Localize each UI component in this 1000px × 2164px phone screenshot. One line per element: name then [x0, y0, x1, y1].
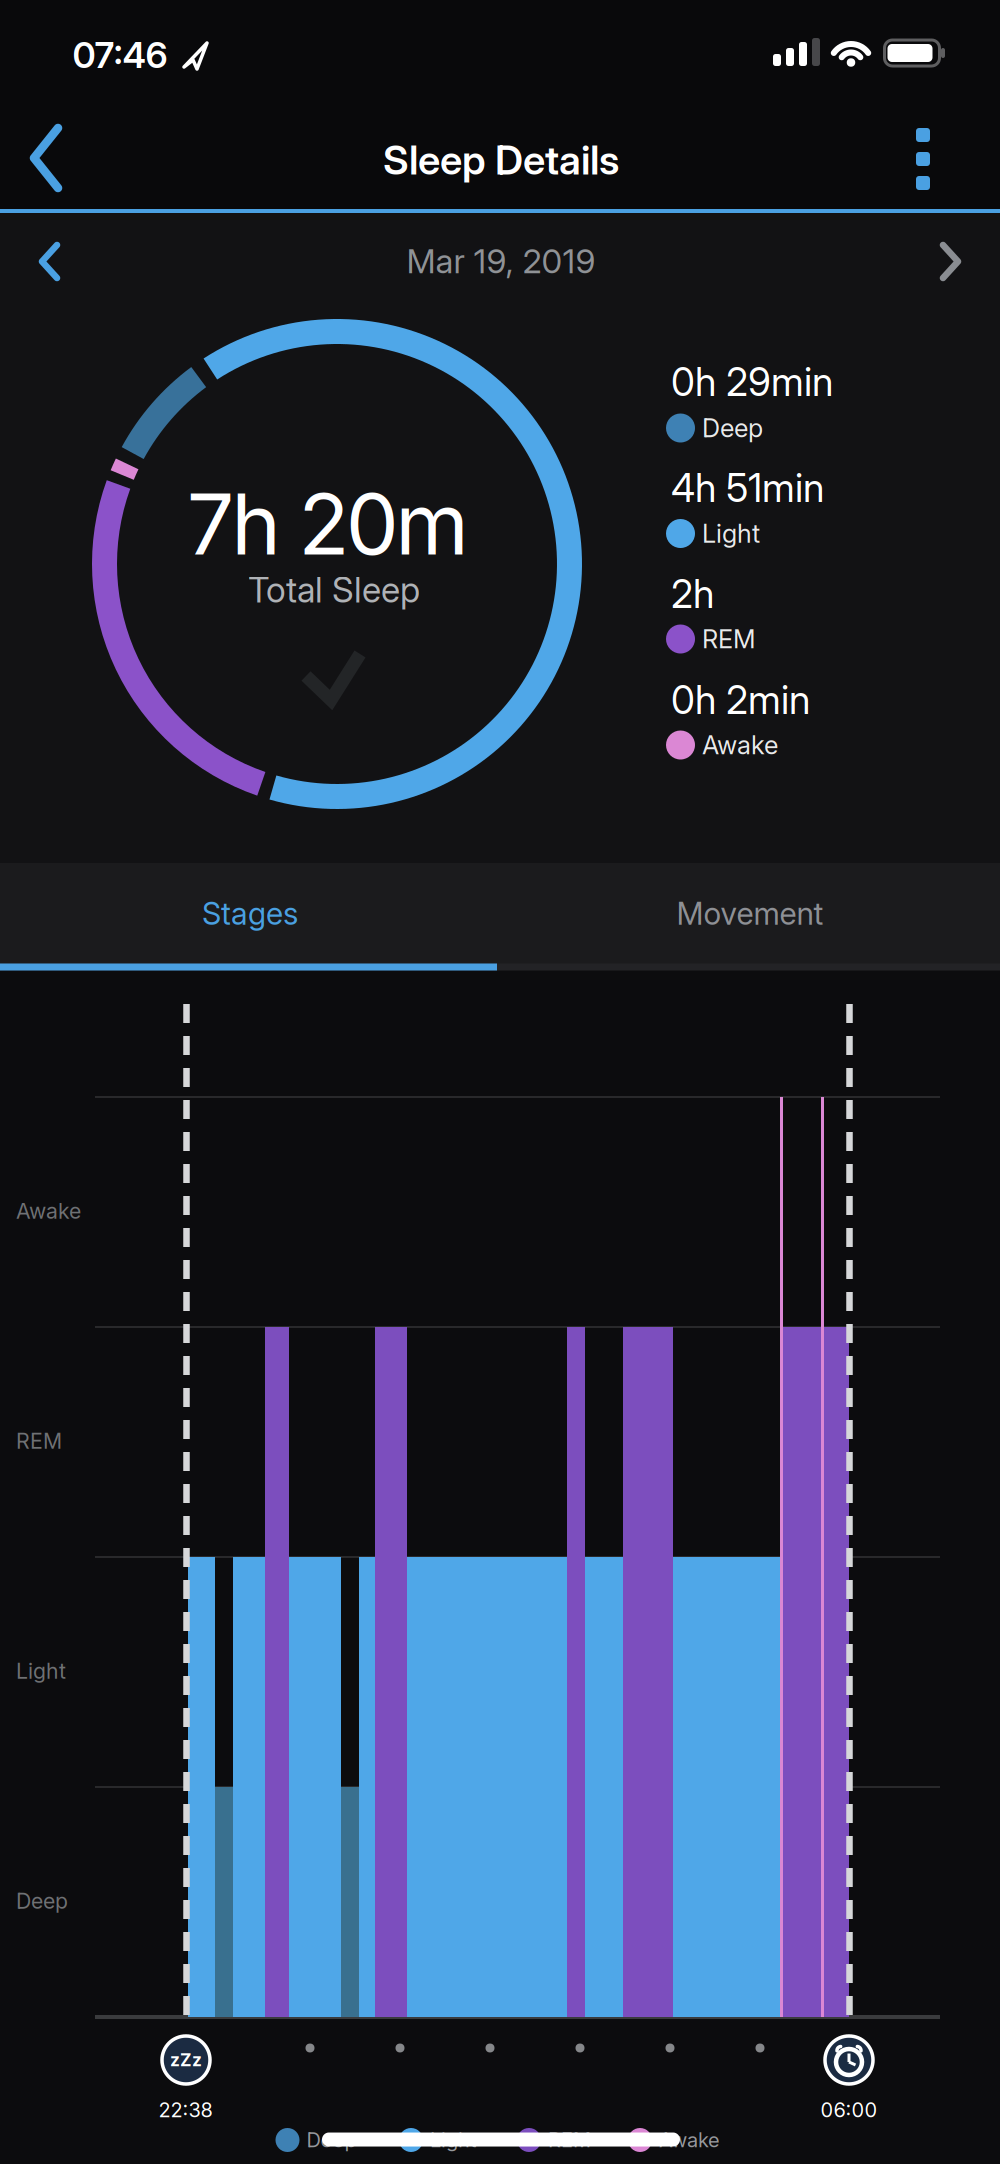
- staticText: 4h 51min: [671, 465, 824, 511]
- staticText: 7h 20m: [187, 474, 469, 574]
- staticText: Sleep Details: [383, 136, 619, 184]
- staticText: Deep: [306, 2128, 356, 2152]
- staticText: Light: [16, 1658, 66, 1684]
- staticText: Light: [430, 2128, 477, 2152]
- staticText: Awake: [16, 1198, 81, 1224]
- staticText: 0h 2min: [671, 677, 810, 723]
- staticText: Deep: [702, 413, 763, 443]
- staticText: Deep: [16, 1888, 68, 1914]
- staticText: 07:46: [72, 34, 167, 76]
- button[interactable]: Previous day: [19, 226, 79, 296]
- staticText: REM: [16, 1428, 62, 1454]
- staticText: 2h: [671, 571, 714, 617]
- staticText: 06:00: [820, 2098, 877, 2122]
- staticText: REM: [548, 2128, 591, 2152]
- staticText: 0h 29min: [671, 359, 833, 405]
- button[interactable]: More options: [888, 109, 958, 209]
- staticText: Total Sleep: [248, 570, 420, 610]
- button[interactable]: Movement: [500, 863, 1000, 964]
- button[interactable]: Back: [2, 108, 90, 208]
- staticText: Light: [702, 519, 760, 548]
- button[interactable]: Stages: [0, 863, 500, 964]
- staticText: Awake: [702, 730, 778, 760]
- staticText: 22:38: [158, 2098, 212, 2122]
- staticText: Mar 19, 2019: [406, 241, 595, 281]
- staticText: Awake: [659, 2128, 720, 2152]
- staticText: zZz: [170, 2050, 202, 2070]
- staticText: REM: [702, 624, 756, 654]
- button[interactable]: Next day: [920, 226, 980, 296]
- staticText: Stages: [202, 895, 298, 932]
- staticText: Movement: [676, 895, 823, 932]
